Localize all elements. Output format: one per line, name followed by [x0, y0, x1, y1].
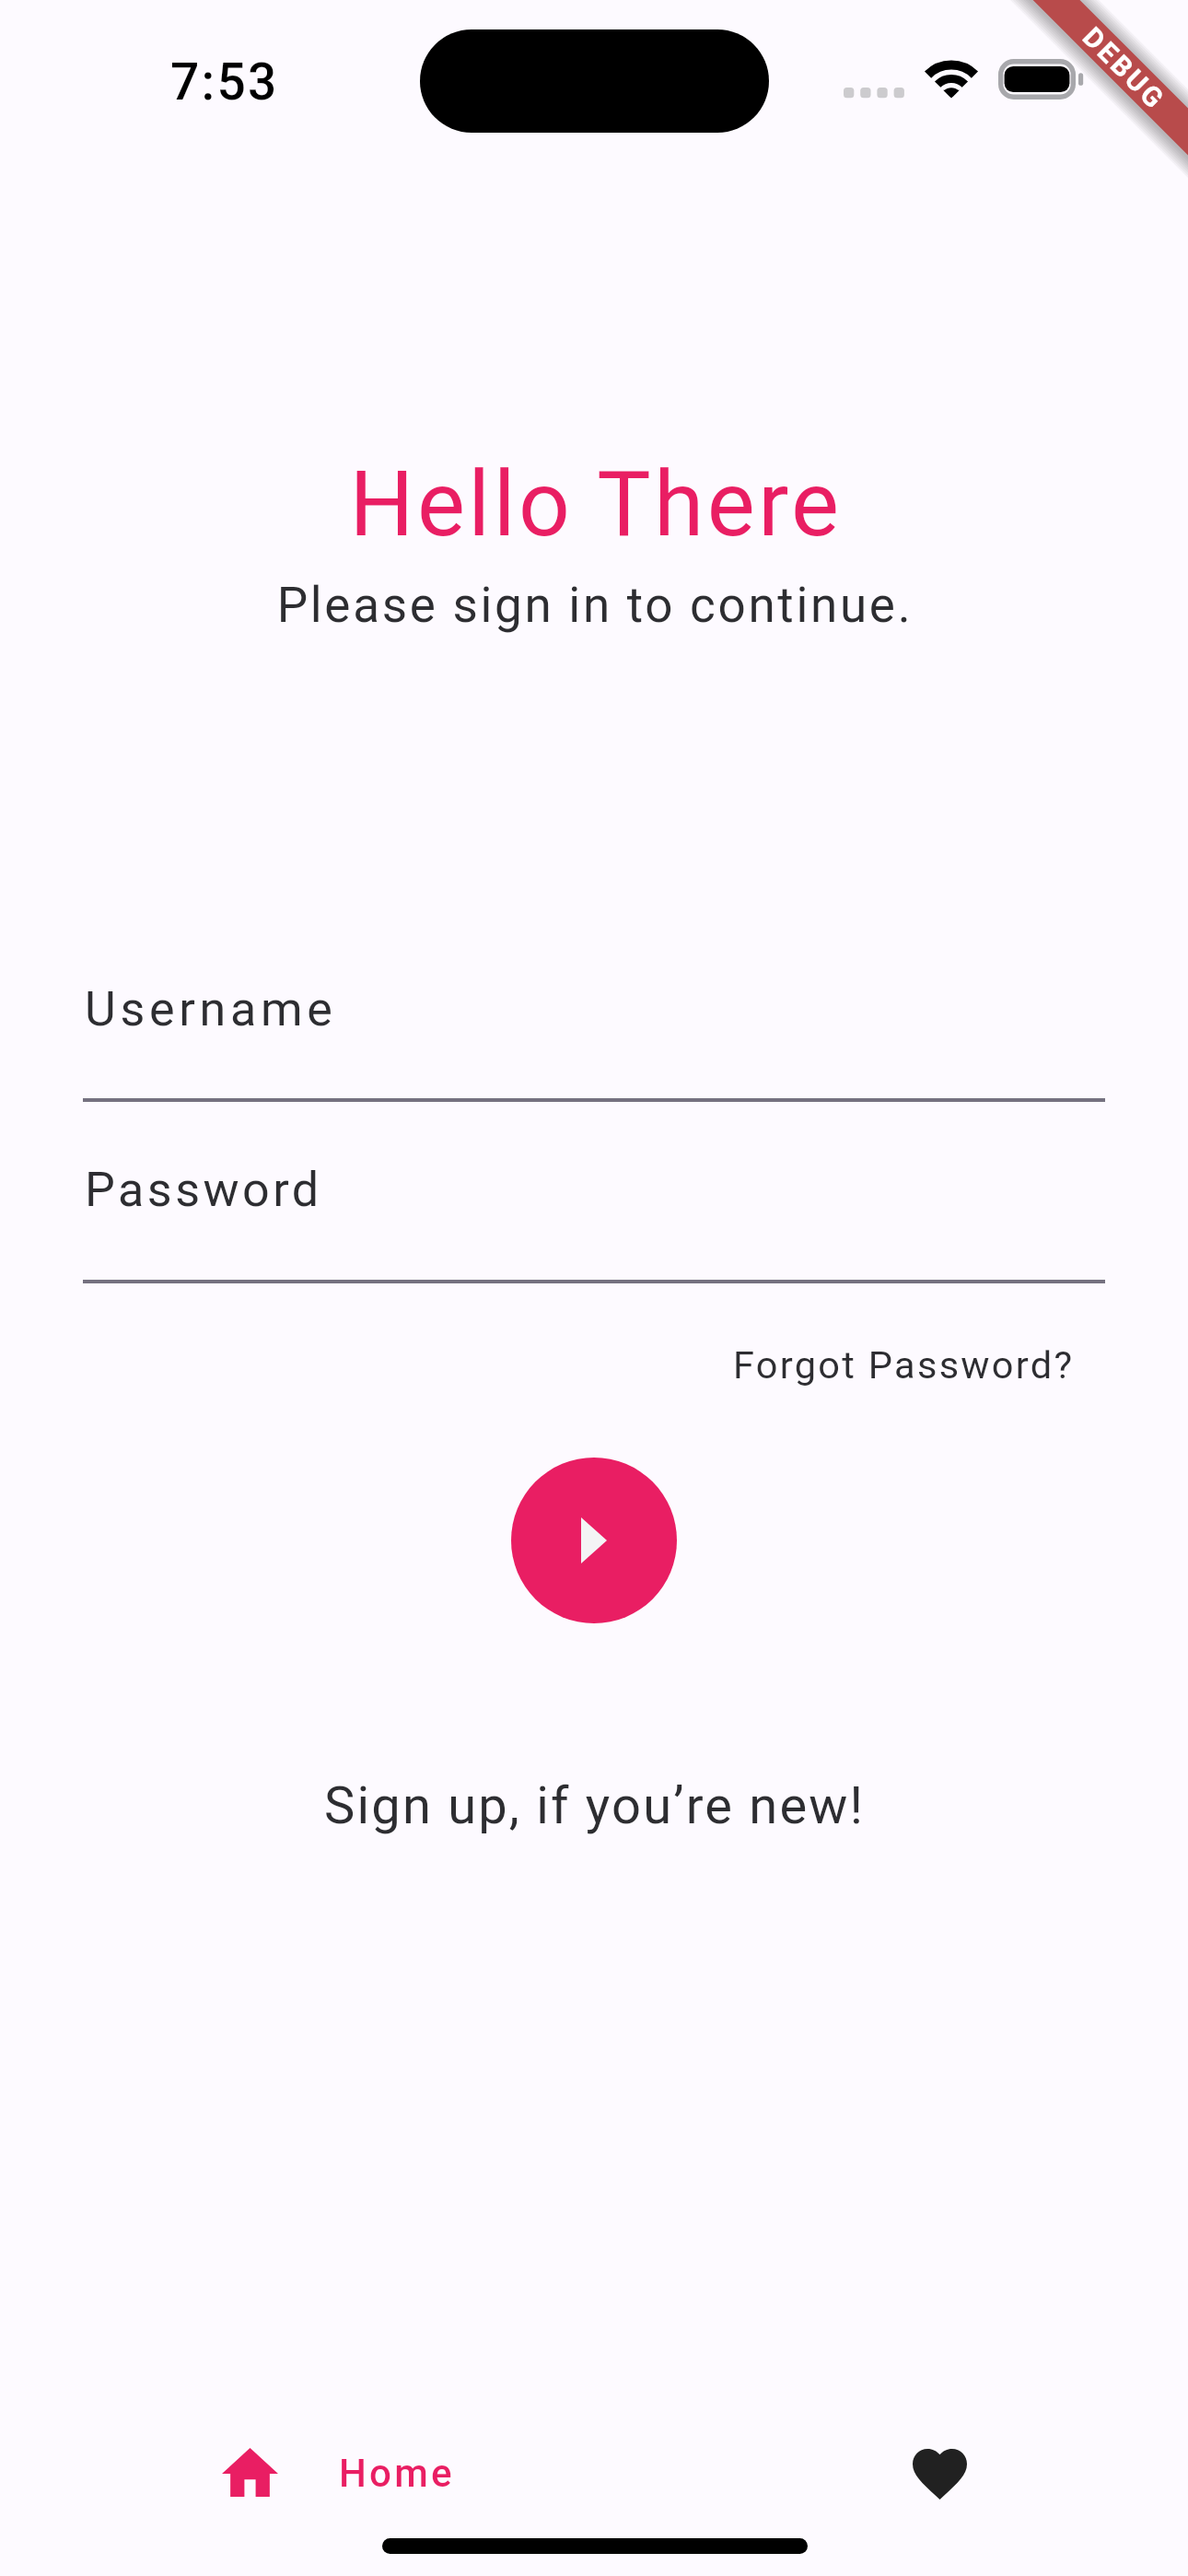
staticText: 7:53 — [170, 53, 279, 111]
button[interactable]: Sign in — [511, 1458, 677, 1623]
button[interactable]: Forgot Password? — [705, 1326, 1102, 1404]
button[interactable]: Home — [185, 2411, 492, 2534]
staticText: Forgot Password? — [733, 1342, 1075, 1388]
button[interactable]: Password — [83, 1148, 1105, 1282]
staticText: Password — [85, 1162, 322, 1218]
staticText: Sign up, if you’re new! — [324, 1775, 866, 1836]
staticText: Please sign in to continue. — [1, 577, 1188, 634]
staticText: DEBUG — [1076, 21, 1172, 116]
button[interactable]: Sign up, if you’re new! — [297, 1757, 893, 1855]
button[interactable]: Username — [83, 967, 1105, 1102]
button[interactable]: Favorites — [876, 2412, 1004, 2536]
staticText: Hello There — [2, 451, 1188, 557]
staticText: Username — [85, 981, 337, 1037]
staticText: Home — [339, 2451, 455, 2496]
